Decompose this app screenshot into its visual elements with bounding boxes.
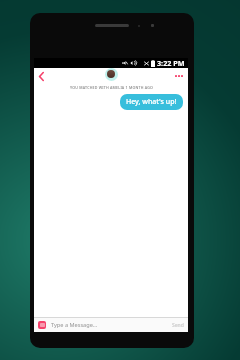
button[interactable]: Send <box>172 318 184 332</box>
staticText: 3:22 PM <box>157 58 185 68</box>
staticText: Hey, what's up! <box>126 97 177 107</box>
button[interactable]: Send GIF <box>38 321 46 329</box>
button[interactable]: Back <box>34 68 48 84</box>
button[interactable]: Type a Message... <box>51 318 172 332</box>
staticText: Type a Message... <box>51 321 98 329</box>
button[interactable]: Profile <box>104 67 118 81</box>
staticText: Send <box>172 322 184 329</box>
button[interactable]: Hey, what's up! <box>120 94 183 110</box>
staticText: YOU MATCHED WITH AMELIA 1 MONTH AGO <box>70 85 153 90</box>
button[interactable]: More options <box>170 68 188 84</box>
